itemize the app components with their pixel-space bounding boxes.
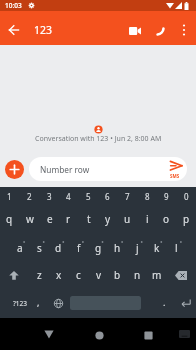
button[interactable]: l xyxy=(167,238,186,258)
button[interactable]: e xyxy=(40,209,59,229)
staticText: i xyxy=(146,212,149,226)
button[interactable]: 7 xyxy=(118,189,137,203)
button[interactable]: m xyxy=(147,265,166,285)
button[interactable]: Number row xyxy=(29,157,187,181)
button[interactable] xyxy=(50,295,66,311)
button[interactable]: 0 xyxy=(177,189,196,203)
staticText: 0 xyxy=(184,191,189,202)
button[interactable]: 5 xyxy=(79,189,98,203)
button[interactable]: i xyxy=(138,209,157,229)
button[interactable]: 3 xyxy=(40,189,59,203)
staticText: a xyxy=(17,241,23,255)
staticText: m xyxy=(152,268,162,282)
button[interactable]: y xyxy=(98,209,117,229)
button[interactable]: o xyxy=(157,209,176,229)
staticText: v xyxy=(96,268,102,282)
staticText: n xyxy=(134,268,141,282)
button[interactable] xyxy=(4,265,24,285)
button[interactable] xyxy=(7,23,21,37)
button[interactable]: t xyxy=(79,209,98,229)
staticText: c xyxy=(76,268,81,282)
staticText: j xyxy=(136,241,139,255)
staticText: o xyxy=(163,212,170,226)
button[interactable]: u xyxy=(118,209,137,229)
staticText: l xyxy=(175,241,178,255)
staticText: g xyxy=(95,241,102,255)
staticText: 2 xyxy=(27,191,32,202)
button[interactable]: j xyxy=(128,238,147,258)
button[interactable] xyxy=(170,265,192,285)
button[interactable]: f xyxy=(69,238,88,258)
button[interactable]: z xyxy=(30,265,49,285)
staticText: 5 xyxy=(86,191,91,202)
staticText: h xyxy=(114,241,121,255)
button[interactable]: 6 xyxy=(98,189,117,203)
staticText: q xyxy=(6,212,13,226)
button[interactable]: k xyxy=(147,238,166,258)
staticText: Conversation with 123 • Jun 2, 8:00 AM xyxy=(35,134,162,143)
button[interactable]: p xyxy=(177,209,196,229)
button[interactable] xyxy=(127,24,143,38)
staticText: 8 xyxy=(145,191,150,202)
staticText: , xyxy=(37,296,40,308)
staticText: d xyxy=(55,241,62,255)
button[interactable]: x xyxy=(49,265,68,285)
button[interactable]: d xyxy=(49,238,68,258)
button[interactable]: s xyxy=(30,238,49,258)
button[interactable]: 2 xyxy=(20,189,39,203)
staticText: Number row xyxy=(40,164,90,175)
staticText: e xyxy=(47,212,53,226)
button[interactable] xyxy=(5,160,24,179)
button[interactable]: v xyxy=(89,265,108,285)
button[interactable]: . xyxy=(158,294,170,310)
button[interactable] xyxy=(152,24,168,38)
staticText: x xyxy=(56,268,62,282)
button[interactable]: g xyxy=(89,238,108,258)
button[interactable]: a xyxy=(10,238,29,258)
button[interactable]: 1 xyxy=(0,189,19,203)
button[interactable] xyxy=(90,326,108,344)
button[interactable]: h xyxy=(108,238,127,258)
staticText: 123 xyxy=(34,23,53,37)
button[interactable]: 8 xyxy=(138,189,157,203)
staticText: 6 xyxy=(105,191,110,202)
button[interactable]: 9 xyxy=(157,189,176,203)
staticText: w xyxy=(26,212,34,226)
staticText: z xyxy=(37,268,42,282)
button[interactable]: ?123 xyxy=(8,295,32,311)
staticText: ?123 xyxy=(13,299,27,308)
button[interactable] xyxy=(168,160,183,172)
staticText: 3 xyxy=(47,191,52,202)
staticText: u xyxy=(124,212,131,226)
button[interactable]: w xyxy=(20,209,39,229)
staticText: 10:03 xyxy=(5,1,22,10)
staticText: 4 xyxy=(66,191,71,202)
staticText: 9 xyxy=(164,191,169,202)
staticText: 1 xyxy=(7,191,12,202)
button[interactable] xyxy=(139,326,157,344)
staticText: . xyxy=(163,296,166,308)
button[interactable]: q xyxy=(0,209,19,229)
button[interactable]: b xyxy=(108,265,127,285)
staticText: f xyxy=(77,241,81,255)
button[interactable]: r xyxy=(59,209,78,229)
button[interactable] xyxy=(178,23,190,37)
button[interactable] xyxy=(40,325,58,343)
staticText: 7 xyxy=(125,191,130,202)
button[interactable] xyxy=(177,328,191,340)
staticText: s xyxy=(37,241,42,255)
button[interactable]: n xyxy=(128,265,147,285)
button[interactable]: c xyxy=(69,265,88,285)
staticText: b xyxy=(114,268,121,282)
button[interactable] xyxy=(177,295,195,311)
staticText: t xyxy=(87,212,91,226)
button[interactable]: 4 xyxy=(59,189,78,203)
button[interactable]: , xyxy=(32,294,44,310)
staticText: r xyxy=(66,212,71,226)
staticText: k xyxy=(154,241,160,255)
staticText: p xyxy=(183,212,190,226)
staticText: y xyxy=(105,212,111,226)
staticText: SMS xyxy=(170,173,180,179)
